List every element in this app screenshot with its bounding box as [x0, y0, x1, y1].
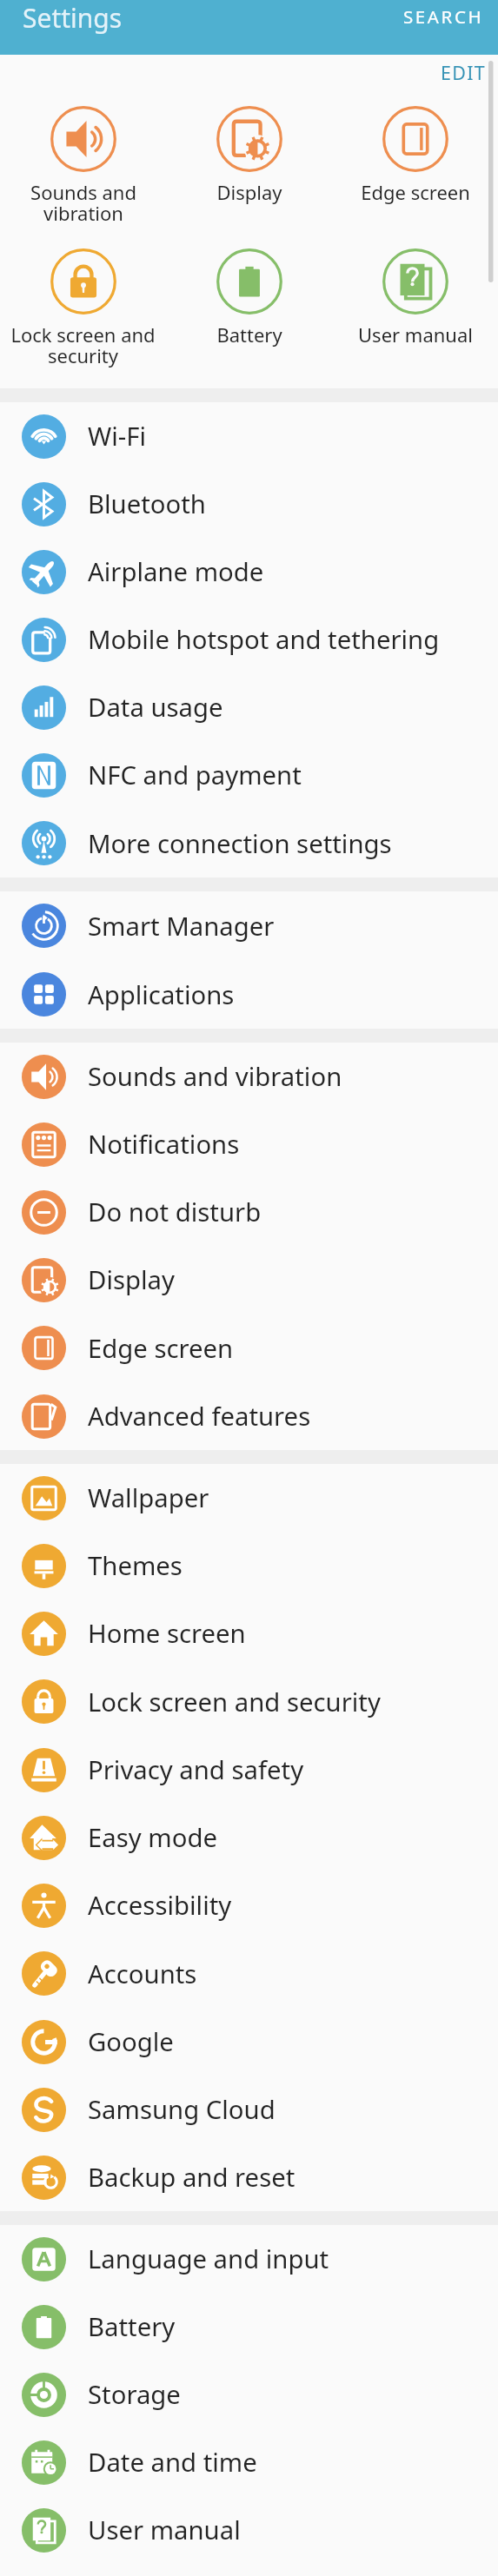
- button[interactable]: Date and time: [0, 2428, 498, 2496]
- button[interactable]: Easy mode: [0, 1804, 498, 1871]
- button[interactable]: Wi-Fi: [0, 402, 498, 470]
- staticText: Sounds and vibration: [88, 1059, 342, 1094]
- staticText: Google: [88, 2024, 174, 2059]
- button[interactable]: Accounts: [0, 1939, 498, 2008]
- button[interactable]: Do not disturb: [0, 1178, 498, 1246]
- button[interactable]: Storage: [0, 2361, 498, 2428]
- button[interactable]: Mobile hotspot and tethering: [0, 606, 498, 673]
- staticText: Samsung Cloud: [88, 2092, 276, 2127]
- staticText: Accounts: [88, 1957, 197, 1991]
- button[interactable]: Privacy and safety: [0, 1736, 498, 1804]
- staticText: Advanced features: [88, 1399, 311, 1434]
- staticText: Edge screen: [88, 1331, 234, 1366]
- button[interactable]: Airplane mode: [0, 538, 498, 606]
- button[interactable]: Smart Manager: [0, 891, 498, 960]
- button[interactable]: Wallpaper: [0, 1464, 498, 1532]
- button[interactable]: Accessibility: [0, 1871, 498, 1939]
- button[interactable]: Applications: [0, 960, 498, 1029]
- staticText: Bluetooth: [88, 487, 206, 521]
- staticText: SEARCH: [403, 4, 484, 29]
- staticText: Lock screen and security: [10, 321, 156, 368]
- button[interactable]: Sounds and vibration: [0, 106, 166, 248]
- staticText: Wi-Fi: [88, 419, 147, 454]
- staticText: Edge screen: [361, 179, 470, 205]
- staticText: Smart Manager: [88, 909, 275, 944]
- staticText: Applications: [88, 977, 235, 1012]
- button[interactable]: Language and input: [0, 2225, 498, 2293]
- staticText: Airplane mode: [88, 554, 264, 589]
- button[interactable]: Home screen: [0, 1599, 498, 1667]
- button[interactable]: Edge screen: [0, 1314, 498, 1382]
- button[interactable]: Lock screen and security: [0, 1667, 498, 1736]
- staticText: Date and time: [88, 2445, 257, 2480]
- staticText: User manual: [358, 321, 473, 348]
- staticText: NFC and payment: [88, 758, 302, 792]
- staticText: EDIT: [441, 60, 487, 85]
- button[interactable]: User manual: [332, 248, 498, 388]
- button[interactable]: Notifications: [0, 1110, 498, 1178]
- staticText: Battery: [88, 2309, 176, 2344]
- button[interactable]: EDIT: [418, 61, 498, 100]
- button[interactable]: Themes: [0, 1532, 498, 1599]
- staticText: Sounds and vibration: [30, 179, 136, 226]
- staticText: Language and input: [88, 2242, 329, 2276]
- button[interactable]: SEARCH: [386, 7, 498, 49]
- staticText: More connection settings: [88, 826, 392, 861]
- staticText: Storage: [88, 2377, 181, 2412]
- staticText: Backup and reset: [88, 2160, 295, 2195]
- button[interactable]: Sounds and vibration: [0, 1043, 498, 1110]
- staticText: Settings: [23, 0, 123, 36]
- staticText: Mobile hotspot and tethering: [88, 622, 440, 657]
- staticText: Themes: [88, 1548, 183, 1583]
- button[interactable]: Display: [166, 106, 332, 248]
- staticText: Lock screen and security: [88, 1685, 381, 1719]
- staticText: Display: [88, 1262, 175, 1297]
- staticText: Data usage: [88, 690, 223, 725]
- button[interactable]: Google: [0, 2008, 498, 2076]
- staticText: Battery: [216, 321, 282, 348]
- button[interactable]: Advanced features: [0, 1382, 498, 1450]
- staticText: Accessibility: [88, 1888, 232, 1923]
- button[interactable]: Data usage: [0, 673, 498, 741]
- button[interactable]: Battery: [0, 2293, 498, 2361]
- staticText: Easy mode: [88, 1820, 217, 1855]
- staticText: Notifications: [88, 1127, 240, 1162]
- button[interactable]: User manual: [0, 2496, 498, 2564]
- button[interactable]: More connection settings: [0, 809, 498, 877]
- staticText: Privacy and safety: [88, 1752, 304, 1787]
- button[interactable]: Backup and reset: [0, 2143, 498, 2211]
- staticText: Home screen: [88, 1616, 246, 1651]
- button[interactable]: Battery: [166, 248, 332, 388]
- staticText: User manual: [88, 2513, 241, 2547]
- staticText: Wallpaper: [88, 1480, 209, 1515]
- button[interactable]: Lock screen and security: [0, 248, 166, 388]
- button[interactable]: Samsung Cloud: [0, 2076, 498, 2143]
- button[interactable]: Display: [0, 1246, 498, 1314]
- staticText: Display: [216, 179, 282, 205]
- button[interactable]: Edge screen: [332, 106, 498, 248]
- button[interactable]: Bluetooth: [0, 470, 498, 538]
- staticText: Do not disturb: [88, 1195, 262, 1229]
- button[interactable]: NFC and payment: [0, 741, 498, 809]
